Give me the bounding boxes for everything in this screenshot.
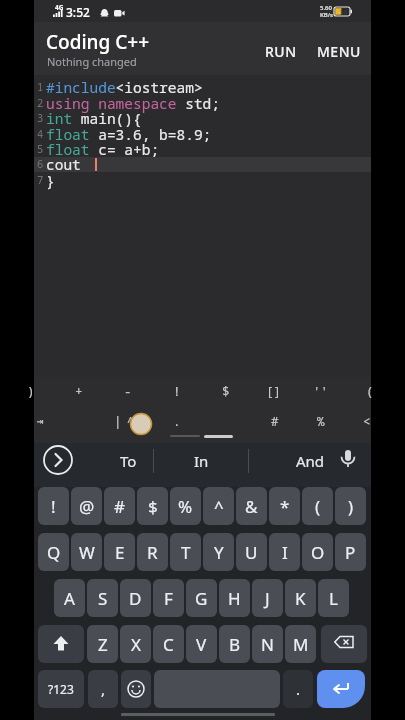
- staticText: In: [194, 451, 209, 471]
- staticText: $: [222, 383, 230, 399]
- staticText: D: [129, 587, 142, 610]
- button[interactable]: (: [302, 487, 333, 525]
- button[interactable]: J: [252, 579, 283, 617]
- staticText: O: [311, 541, 325, 564]
- button[interactable]: Z: [87, 625, 118, 663]
- staticText: P: [345, 541, 356, 564]
- staticText: RUN: [265, 42, 297, 61]
- staticText: ): [27, 383, 35, 399]
- button[interactable]: P: [335, 533, 366, 571]
- button[interactable]: MENU: [314, 40, 364, 62]
- button[interactable]: [121, 670, 151, 708]
- staticText: B: [229, 633, 241, 656]
- staticText: H: [228, 587, 241, 610]
- staticText: 4: [37, 127, 44, 141]
- staticText: int main(){: [46, 108, 142, 128]
- staticText: T: [181, 541, 191, 564]
- button[interactable]: Y: [203, 533, 234, 571]
- staticText: ^: [214, 495, 224, 518]
- staticText: K: [295, 587, 306, 610]
- button[interactable]: W: [71, 533, 102, 571]
- staticText: float c= a+b;: [46, 139, 160, 159]
- button[interactable]: ): [335, 487, 366, 525]
- button[interactable]: K: [285, 579, 316, 617]
- staticText: Q: [47, 541, 61, 564]
- button[interactable]: C: [153, 625, 184, 663]
- button[interactable]: To: [110, 448, 146, 474]
- button[interactable]: O: [302, 533, 333, 571]
- button[interactable]: ^: [203, 487, 234, 525]
- button[interactable]: @: [71, 487, 102, 525]
- button[interactable]: $: [137, 487, 168, 525]
- button[interactable]: I: [269, 533, 300, 571]
- button[interactable]: &: [236, 487, 267, 525]
- staticText: To: [120, 451, 137, 471]
- staticText: R: [147, 541, 158, 564]
- button[interactable]: A: [54, 579, 85, 617]
- button[interactable]: X: [120, 625, 151, 663]
- button[interactable]: M: [285, 625, 316, 663]
- staticText: .: [296, 679, 301, 699]
- staticText: 6: [37, 157, 44, 171]
- button[interactable]: E: [104, 533, 135, 571]
- button[interactable]: [317, 670, 365, 708]
- button[interactable]: G: [186, 579, 217, 617]
- button[interactable]: [42, 444, 74, 476]
- button[interactable]: ,: [88, 670, 118, 708]
- staticText: '': [313, 383, 329, 399]
- staticText: Y: [214, 541, 224, 564]
- button[interactable]: D: [120, 579, 151, 617]
- button[interactable]: [38, 625, 84, 663]
- button[interactable]: H: [219, 579, 250, 617]
- staticText: !: [173, 383, 181, 399]
- button[interactable]: T: [170, 533, 201, 571]
- button[interactable]: [321, 625, 367, 663]
- staticText: I: [282, 541, 288, 564]
- button[interactable]: *: [269, 487, 300, 525]
- button[interactable]: L: [318, 579, 349, 617]
- button[interactable]: N: [252, 625, 283, 663]
- button[interactable]: R: [137, 533, 168, 571]
- button[interactable]: [154, 670, 280, 708]
- button[interactable]: .: [283, 670, 313, 708]
- button[interactable]: In: [184, 448, 218, 474]
- staticText: M: [293, 633, 309, 656]
- button[interactable]: RUN: [262, 40, 300, 62]
- staticText: Coding C++: [46, 29, 150, 55]
- staticText: @: [79, 495, 95, 518]
- button[interactable]: [336, 446, 360, 474]
- staticText: KB/s: [320, 11, 333, 18]
- staticText: S: [98, 587, 108, 610]
- button[interactable]: Q: [38, 533, 69, 571]
- staticText: ): [348, 495, 354, 518]
- staticText: MENU: [317, 42, 361, 61]
- staticText: X: [131, 633, 141, 656]
- staticText: *: [280, 495, 290, 518]
- staticText: E: [115, 541, 125, 564]
- button[interactable]: %: [170, 487, 201, 525]
- staticText: 3: [37, 111, 44, 125]
- button[interactable]: U: [236, 533, 267, 571]
- staticText: V: [196, 633, 207, 656]
- button[interactable]: S: [87, 579, 118, 617]
- staticText: !: [51, 495, 56, 518]
- button[interactable]: And: [288, 448, 332, 474]
- staticText: #: [114, 495, 125, 518]
- staticText: +: [75, 383, 83, 399]
- staticText: }: [46, 170, 55, 190]
- staticText: <: [363, 413, 371, 429]
- button[interactable]: ?123: [38, 670, 84, 708]
- staticText: 39: [340, 8, 348, 16]
- button[interactable]: B: [219, 625, 250, 663]
- button[interactable]: !: [38, 487, 69, 525]
- staticText: U: [245, 541, 258, 564]
- staticText: 1: [37, 80, 44, 94]
- staticText: %: [178, 495, 193, 518]
- staticText: $: [148, 495, 158, 518]
- button[interactable]: V: [186, 625, 217, 663]
- staticText: .: [173, 413, 181, 429]
- staticText: []: [266, 383, 282, 399]
- staticText: ⇥: [37, 415, 44, 428]
- button[interactable]: #: [104, 487, 135, 525]
- button[interactable]: F: [153, 579, 184, 617]
